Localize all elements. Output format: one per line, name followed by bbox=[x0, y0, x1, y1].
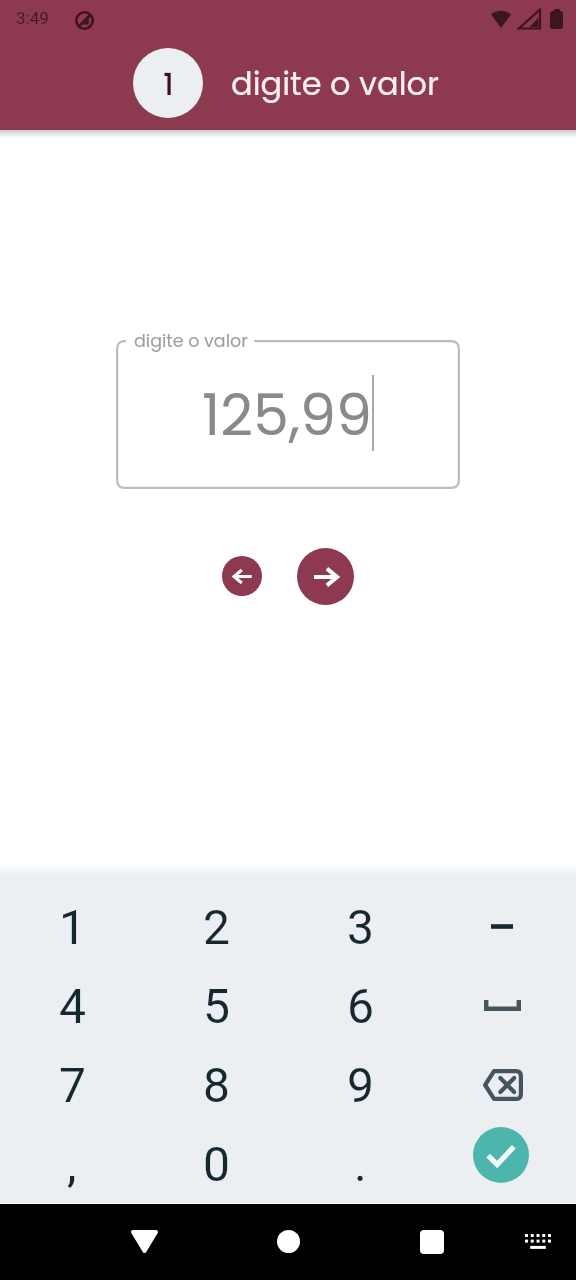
staticText: 3:49 bbox=[16, 8, 49, 28]
staticText: digite o valor bbox=[231, 61, 439, 106]
staticText: . bbox=[354, 1136, 367, 1192]
staticText: 4 bbox=[59, 978, 86, 1034]
button[interactable]: digite o valor bbox=[116, 340, 460, 489]
staticText: 125,99 bbox=[202, 375, 372, 455]
button[interactable]: Proximo bbox=[297, 548, 354, 605]
staticText: , bbox=[67, 1136, 77, 1192]
button[interactable]: 9 bbox=[288, 1045, 432, 1124]
other: menos bbox=[491, 924, 513, 929]
other: apagar bbox=[481, 1069, 523, 1101]
button[interactable]: Etapa 1 bbox=[133, 48, 203, 118]
staticText: 1 bbox=[163, 62, 174, 105]
button[interactable]: , bbox=[0, 1124, 144, 1203]
staticText: 0 bbox=[203, 1136, 230, 1192]
button[interactable]: menos bbox=[432, 887, 576, 966]
button[interactable]: espaco bbox=[432, 966, 576, 1045]
button[interactable]: Recentes bbox=[404, 1204, 460, 1280]
button[interactable]: 0 bbox=[144, 1124, 288, 1203]
button[interactable]: 7 bbox=[0, 1045, 144, 1124]
button[interactable]: 6 bbox=[288, 966, 432, 1045]
other: espaco bbox=[484, 1000, 521, 1011]
button[interactable]: Inicio bbox=[260, 1204, 316, 1280]
button[interactable]: 2 bbox=[144, 887, 288, 966]
staticText: 7 bbox=[59, 1057, 86, 1113]
button[interactable]: . bbox=[288, 1124, 432, 1203]
staticText: 1 bbox=[59, 899, 86, 955]
staticText: 3 bbox=[347, 899, 374, 955]
button[interactable]: 3 bbox=[288, 887, 432, 966]
button[interactable]: 8 bbox=[144, 1045, 288, 1124]
staticText: 8 bbox=[203, 1057, 230, 1113]
button[interactable]: apagar bbox=[432, 1045, 576, 1124]
staticText: 2 bbox=[203, 899, 230, 955]
button[interactable]: Voltar bbox=[116, 1204, 172, 1280]
staticText: 6 bbox=[347, 978, 374, 1034]
button[interactable]: 1 bbox=[0, 887, 144, 966]
button[interactable]: Anterior bbox=[222, 556, 262, 596]
button[interactable]: confirmar bbox=[432, 1124, 576, 1203]
other: confirmar bbox=[473, 1127, 529, 1183]
staticText: digite o valor bbox=[134, 329, 248, 354]
button[interactable]: Teclado bbox=[510, 1204, 566, 1280]
button[interactable]: 4 bbox=[0, 966, 144, 1045]
button[interactable]: 5 bbox=[144, 966, 288, 1045]
staticText: 9 bbox=[347, 1057, 374, 1113]
staticText: 5 bbox=[203, 978, 230, 1034]
